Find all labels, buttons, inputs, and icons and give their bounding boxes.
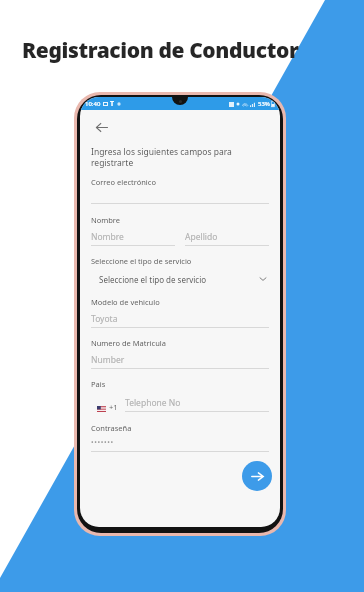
staticText: Toyota	[91, 313, 118, 325]
staticText: Nombre	[91, 231, 124, 243]
button[interactable]: Apellido	[185, 231, 269, 246]
button[interactable]: Number	[91, 354, 269, 369]
staticText: +1	[109, 402, 118, 412]
staticText: Pais	[91, 379, 106, 389]
button[interactable]: Toyota	[91, 313, 269, 328]
button[interactable]: Back	[91, 117, 111, 137]
staticText: 10:40	[85, 100, 101, 108]
staticText: Numero de Matricula	[91, 338, 166, 348]
staticText: Telephone No	[125, 397, 181, 409]
staticText: Ingresa los siguientes campos para regis…	[91, 146, 232, 168]
button[interactable]: Seleccione el tipo de servicio	[99, 272, 266, 286]
button[interactable]: Nombre	[91, 231, 175, 246]
staticText: Seleccione el tipo de servicio	[91, 256, 192, 266]
staticText: Number	[91, 354, 125, 366]
button[interactable]: •••••••	[91, 438, 269, 452]
staticText: T	[110, 99, 115, 109]
staticText: Correo electrónico	[91, 177, 156, 187]
button[interactable]: Continue	[242, 461, 272, 491]
button[interactable]: +1	[91, 397, 269, 412]
staticText: Seleccione el tipo de servicio	[99, 274, 207, 285]
staticText: Apellido	[185, 231, 218, 243]
staticText: Registracion de Conductor	[22, 36, 299, 65]
staticText: •••••••	[91, 438, 114, 448]
staticText: Modelo de vehiculo	[91, 297, 160, 307]
staticText: Contraseña	[91, 423, 132, 433]
staticText: Nombre	[91, 215, 121, 225]
staticText: 53%	[258, 100, 270, 108]
